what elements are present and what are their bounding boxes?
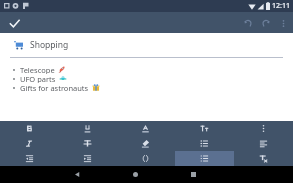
button[interactable]: Recents bbox=[182, 166, 204, 183]
button[interactable]: ITALIC bbox=[0, 136, 58, 151]
button[interactable]: ALIGN_LEFT bbox=[234, 136, 293, 151]
staticText: Telescope bbox=[20, 65, 55, 74]
button[interactable]: Redo bbox=[257, 14, 275, 32]
button[interactable]: More options bbox=[275, 15, 291, 31]
button[interactable]: CLEAR bbox=[234, 151, 293, 166]
button[interactable]: BOLD bbox=[0, 121, 58, 136]
button[interactable]: Back bbox=[66, 166, 88, 183]
button[interactable]: UNDERLINE bbox=[58, 121, 116, 136]
staticText: UFO parts bbox=[20, 74, 56, 83]
button[interactable]: TEXT_SIZE bbox=[175, 121, 234, 136]
button[interactable]: BULLET_LIST bbox=[175, 136, 234, 151]
button[interactable]: MORE_V bbox=[234, 121, 293, 136]
staticText: Shopping bbox=[30, 39, 69, 51]
button[interactable]: Done bbox=[4, 13, 24, 33]
button[interactable]: Undo bbox=[239, 14, 257, 32]
button[interactable]: NUM_LIST bbox=[175, 151, 234, 166]
button[interactable]: HIGHLIGHT bbox=[116, 136, 175, 151]
button[interactable]: CODE bbox=[116, 151, 175, 166]
button[interactable]: TEXT_COLOR bbox=[116, 121, 175, 136]
button[interactable]: STRIKE bbox=[58, 136, 116, 151]
staticText: Gifts for astronauts bbox=[20, 83, 89, 92]
staticText: 12:11 bbox=[272, 1, 290, 11]
button[interactable]: Home bbox=[124, 166, 146, 183]
button[interactable]: INDENT_INC bbox=[58, 151, 116, 166]
button[interactable]: INDENT_DEC bbox=[0, 151, 58, 166]
